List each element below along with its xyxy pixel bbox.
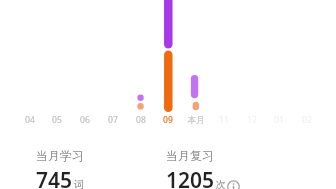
staticText: 09 [163, 114, 173, 126]
staticText: 08 [136, 114, 146, 126]
staticText: 01 [274, 114, 284, 126]
button[interactable]: 07 [99, 114, 127, 126]
button[interactable]: 01 [265, 114, 293, 126]
button[interactable]: 04 [16, 114, 44, 126]
staticText: 当月学习 [36, 148, 84, 163]
staticText: 当月复习 [166, 148, 214, 163]
staticText: 11 [219, 114, 229, 126]
staticText: 02 [302, 114, 312, 126]
button[interactable]: 当月学习 [36, 148, 84, 189]
staticText: 06 [80, 114, 90, 126]
button[interactable]: 当月复习 [166, 148, 239, 189]
button[interactable]: 09 [154, 114, 182, 126]
staticText: 04 [25, 114, 35, 126]
staticText: 1205 [166, 166, 215, 189]
staticText: 次 [216, 178, 226, 189]
button[interactable]: Info [226, 179, 240, 189]
staticText: 12 [247, 114, 257, 126]
button[interactable]: 02 [293, 114, 321, 126]
button[interactable]: 08 [127, 114, 155, 126]
staticText: 05 [52, 114, 62, 126]
button[interactable]: 12 [238, 114, 266, 126]
button[interactable]: 05 [43, 114, 71, 126]
staticText: 745 [36, 166, 73, 189]
button[interactable]: 本月 [182, 114, 210, 126]
staticText: 词 [74, 178, 84, 189]
button[interactable]: 06 [71, 114, 99, 126]
staticText: 07 [108, 114, 118, 126]
staticText: 本月 [187, 115, 205, 126]
